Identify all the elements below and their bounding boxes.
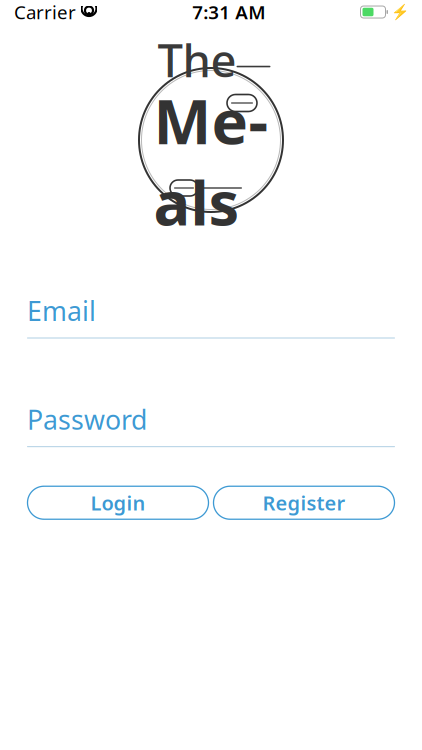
staticText: The: [157, 29, 236, 90]
staticText: Carrier: [14, 0, 76, 24]
staticText: Register: [262, 489, 345, 516]
button[interactable]: Register: [213, 486, 394, 519]
staticText: 7:31 AM: [192, 0, 265, 24]
staticText: ⚡: [391, 4, 409, 20]
staticText: Password: [27, 402, 147, 437]
button[interactable]: Login: [27, 486, 208, 519]
staticText: Email: [27, 293, 96, 328]
staticText: Meals: [153, 80, 268, 243]
staticText: Login: [90, 489, 145, 516]
